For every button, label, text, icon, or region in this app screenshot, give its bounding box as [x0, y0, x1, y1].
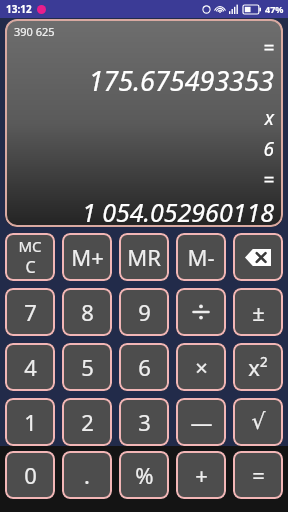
staticText: x: [264, 105, 274, 131]
staticText: 6: [138, 352, 151, 382]
staticText: %: [135, 460, 154, 490]
button[interactable]: Plus minus: [233, 288, 283, 336]
staticText: x²: [248, 352, 268, 382]
button[interactable]: M+: [62, 233, 112, 281]
staticText: 175.675493353: [88, 62, 274, 99]
staticText: M+: [71, 242, 104, 272]
staticText: =: [263, 35, 274, 61]
button[interactable]: M-: [176, 233, 226, 281]
button[interactable]: 2: [62, 398, 112, 446]
staticText: =: [252, 460, 265, 490]
staticText: √: [251, 409, 266, 435]
button[interactable]: Equals: [233, 451, 283, 499]
button[interactable]: Memory clear and clear: [5, 233, 55, 281]
staticText: 1 054.052960118: [82, 195, 274, 223]
button[interactable]: 6: [119, 343, 169, 391]
staticText: MC: [18, 236, 42, 256]
staticText: +: [195, 460, 208, 490]
staticText: 1: [24, 407, 37, 437]
button[interactable]: 0: [5, 451, 55, 499]
staticText: 3: [138, 407, 151, 437]
button[interactable]: Divide: [176, 288, 226, 336]
staticText: 7: [24, 297, 37, 327]
button[interactable]: 8: [62, 288, 112, 336]
staticText: 5: [81, 352, 94, 382]
staticText: C: [25, 256, 36, 278]
button[interactable]: Minus: [176, 398, 226, 446]
staticText: M-: [187, 242, 215, 272]
staticText: ±: [252, 297, 265, 327]
button[interactable]: 390 625: [5, 19, 283, 227]
button[interactable]: 1: [5, 398, 55, 446]
staticText: 6: [263, 136, 274, 162]
button[interactable]: Decimal point: [62, 451, 112, 499]
button[interactable]: MR: [119, 233, 169, 281]
staticText: =: [263, 167, 274, 193]
staticText: 47%: [265, 3, 284, 15]
staticText: 390 625: [14, 24, 55, 39]
staticText: ×: [195, 352, 208, 382]
staticText: 8: [81, 297, 94, 327]
staticText: 2: [81, 407, 94, 437]
staticText: —: [190, 407, 213, 437]
staticText: 9: [138, 297, 151, 327]
button[interactable]: 7: [5, 288, 55, 336]
button[interactable]: 4: [5, 343, 55, 391]
button[interactable]: 5: [62, 343, 112, 391]
button[interactable]: 3: [119, 398, 169, 446]
staticText: MR: [127, 242, 161, 272]
button[interactable]: Plus: [176, 451, 226, 499]
staticText: .: [84, 460, 90, 490]
button[interactable]: Backspace: [233, 233, 283, 281]
button[interactable]: Square root: [233, 398, 283, 446]
staticText: 0: [24, 460, 37, 490]
button[interactable]: Multiply: [176, 343, 226, 391]
staticText: 4: [24, 352, 37, 382]
staticText: 13:12: [6, 2, 32, 16]
button[interactable]: 9: [119, 288, 169, 336]
button[interactable]: Square: [233, 343, 283, 391]
button[interactable]: Percent: [119, 451, 169, 499]
